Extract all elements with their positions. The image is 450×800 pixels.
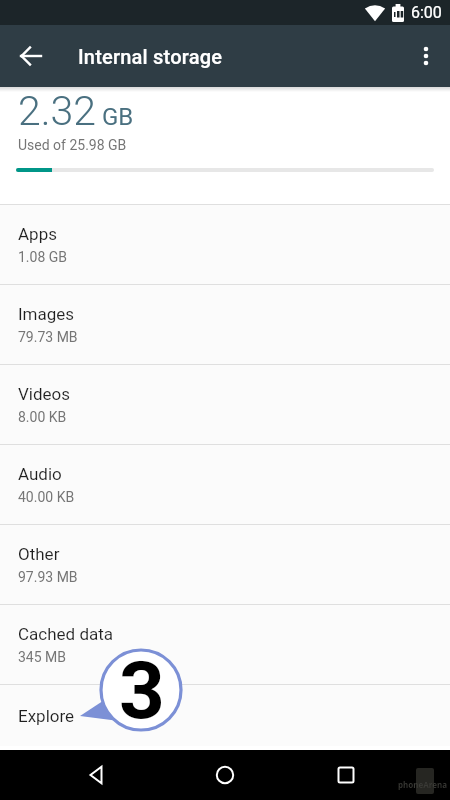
staticText: 40.00 KB xyxy=(18,489,75,505)
staticText: phoneArena xyxy=(398,779,447,790)
staticText: 345 MB xyxy=(18,649,67,665)
button[interactable] xyxy=(309,750,383,800)
button[interactable]: Audio xyxy=(0,444,450,524)
button[interactable] xyxy=(60,750,134,800)
staticText: GB xyxy=(102,103,134,131)
staticText: Explore xyxy=(18,706,75,726)
staticText: Cached data xyxy=(18,624,114,644)
button[interactable]: Apps xyxy=(0,204,450,284)
staticText: 2.32 xyxy=(18,87,97,135)
staticText: 8.00 KB xyxy=(18,409,67,425)
staticText: 1.08 GB xyxy=(18,249,68,265)
button[interactable] xyxy=(402,25,450,87)
staticText: 97.93 MB xyxy=(18,569,78,585)
button[interactable]: Images xyxy=(0,284,450,364)
staticText: Used of 25.98 GB xyxy=(18,137,127,153)
button[interactable] xyxy=(188,750,262,800)
button[interactable]: Cached data xyxy=(0,604,450,684)
staticText: 3 xyxy=(119,644,165,738)
button[interactable] xyxy=(0,25,62,87)
staticText: Apps xyxy=(18,224,57,244)
button[interactable]: Explore xyxy=(0,684,450,746)
button[interactable]: Videos xyxy=(0,364,450,444)
staticText: 6:00 xyxy=(411,3,442,22)
staticText: 79.73 MB xyxy=(18,329,78,345)
staticText: Images xyxy=(18,304,75,324)
staticText: Videos xyxy=(18,384,71,404)
staticText: Internal storage xyxy=(78,45,223,68)
staticText: Other xyxy=(18,544,60,564)
staticText: Audio xyxy=(18,464,62,484)
button[interactable]: Other xyxy=(0,524,450,604)
